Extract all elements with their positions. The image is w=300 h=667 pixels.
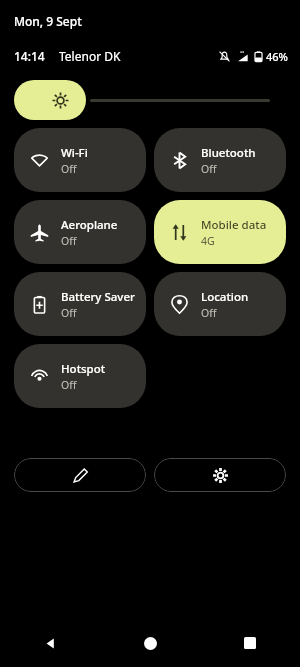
staticText: 14:14 — [14, 48, 45, 64]
staticText: Battery Saver — [61, 289, 135, 305]
button[interactable]: Bluetooth — [154, 128, 286, 192]
staticText: Hotspot — [61, 361, 106, 377]
staticText: 4G — [201, 234, 215, 248]
button[interactable]: Back — [0, 619, 100, 667]
button[interactable]: Mobile data — [154, 200, 286, 264]
button[interactable]: Home — [100, 619, 200, 667]
staticText: Mon, 9 Sept — [14, 13, 82, 29]
staticText: Off — [61, 162, 77, 176]
button[interactable]: Aeroplane mode — [14, 200, 146, 264]
staticText: Mobile data — [201, 217, 267, 233]
button[interactable]: Wi-Fi — [14, 128, 146, 192]
staticText: Off — [61, 378, 77, 392]
button[interactable]: Recent apps — [200, 619, 300, 667]
button[interactable]: Location — [154, 272, 286, 336]
button[interactable]: Battery Saver — [14, 272, 146, 336]
staticText: Off — [201, 306, 217, 320]
button[interactable]: Edit tiles — [14, 458, 146, 492]
staticText: Wi-Fi — [61, 145, 88, 161]
button[interactable]: Hotspot — [14, 344, 146, 408]
staticText: Bluetooth — [201, 145, 256, 161]
staticText: Off — [201, 162, 217, 176]
button[interactable]: Brightness — [14, 78, 286, 122]
button[interactable]: Settings — [154, 458, 286, 492]
staticText: Telenor DK — [59, 48, 121, 64]
staticText: 46% — [266, 49, 288, 64]
staticText: Location — [201, 289, 249, 305]
staticText: Aeroplane mode — [61, 217, 138, 233]
staticText: Off — [61, 306, 77, 320]
staticText: Off — [61, 234, 77, 248]
